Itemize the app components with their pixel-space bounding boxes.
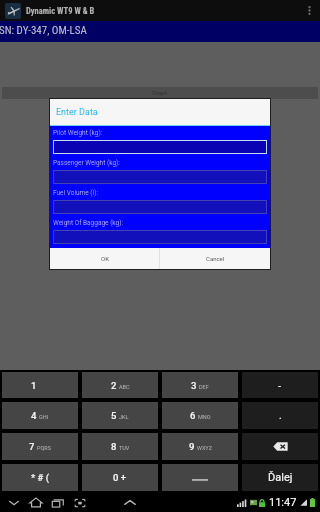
button[interactable] (53, 140, 267, 154)
staticText: 8 (111, 441, 117, 452)
other: Secure (259, 499, 265, 507)
staticText: 7 (29, 441, 35, 452)
other: Wifi (300, 499, 307, 506)
staticText: OK (101, 255, 109, 262)
staticText: Fuel Volume (l): (53, 189, 99, 197)
staticText: ABC (119, 384, 130, 390)
other: Delete (273, 442, 288, 451)
staticText: MNO (198, 414, 211, 420)
staticText: DEF (199, 384, 209, 390)
staticText: 11:47 (269, 496, 297, 509)
staticText: 4 (31, 410, 37, 421)
button[interactable] (53, 170, 267, 184)
staticText: 3 (191, 380, 197, 391)
other: Space (192, 474, 208, 481)
button[interactable]: 0 + (82, 464, 158, 491)
button[interactable]: OK (50, 248, 159, 269)
staticText: 5 (111, 410, 117, 421)
staticText: Weight Of Baggage (kg): (53, 219, 124, 227)
staticText: . (279, 410, 282, 421)
staticText: 1 (31, 380, 37, 391)
staticText: Dynamic WT9 W & B (26, 6, 95, 16)
staticText: SN: DY-347, OM-LSA (0, 24, 87, 37)
button[interactable]: Screenshot (69, 493, 91, 512)
staticText: Cancel (206, 255, 225, 262)
other: Battery (310, 498, 315, 507)
button[interactable]: More options (300, 0, 318, 21)
staticText: PQRS (37, 445, 51, 451)
staticText: 0 + (113, 472, 127, 483)
other: Signal (237, 499, 247, 507)
button[interactable]: 6 (162, 402, 238, 429)
button[interactable]: Cancel (160, 248, 270, 269)
button[interactable]: 3 (162, 372, 238, 398)
button[interactable]: 1 (2, 372, 78, 398)
staticText: * # ( (31, 472, 49, 483)
staticText: TUV (119, 445, 130, 451)
button[interactable]: 4 (2, 402, 78, 429)
button[interactable]: Ďalej (242, 464, 318, 491)
button[interactable]: 2 (82, 372, 158, 398)
staticText: WXYZ (197, 445, 212, 451)
button[interactable]: * # ( (2, 464, 78, 491)
button[interactable]: 9 (162, 433, 238, 460)
button[interactable] (53, 200, 267, 214)
button[interactable]: Delete (242, 433, 318, 460)
staticText: - (278, 380, 282, 391)
staticText: Pilot Weight (kg): (53, 129, 103, 137)
button[interactable]: Graph (2, 87, 318, 99)
staticText: 9 (189, 441, 195, 452)
staticText: Passenger Weight (kg): (53, 159, 120, 167)
button[interactable]: 8 (82, 433, 158, 460)
button[interactable]: 5 (82, 402, 158, 429)
button[interactable]: Home (25, 493, 47, 512)
button[interactable]: . (242, 402, 318, 429)
staticText: JKL (119, 414, 129, 420)
button[interactable] (53, 230, 267, 244)
button[interactable]: 7 (2, 433, 78, 460)
staticText: Enter Data (56, 107, 98, 118)
button[interactable]: Space (162, 464, 238, 491)
button[interactable]: - (242, 372, 318, 398)
button[interactable]: Recent apps (47, 493, 69, 512)
button[interactable]: Expand notifications (119, 493, 141, 512)
staticText: Ďalej (268, 471, 293, 484)
staticText: 6 (190, 410, 196, 421)
staticText: Graph (152, 90, 168, 97)
staticText: GHI (39, 414, 49, 420)
staticText: 2 (111, 380, 117, 391)
button[interactable]: Back (3, 493, 25, 512)
